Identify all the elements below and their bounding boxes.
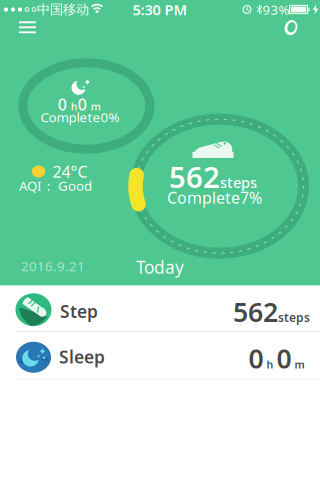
button[interactable]: Menu [13, 15, 42, 39]
staticText: Complete0% [40, 108, 119, 126]
staticText: 24°C [52, 161, 87, 182]
staticText: 562steps [233, 294, 310, 329]
staticText: 0 h0 m [58, 94, 101, 115]
staticText: 93% [262, 1, 289, 18]
button[interactable]: Sleep [0, 332, 320, 379]
staticText: Sleep [59, 345, 105, 368]
staticText: AQI： Good [19, 177, 92, 194]
staticText: 2016.9.21 [21, 257, 85, 275]
staticText: 562steps [169, 157, 257, 196]
button[interactable]: Step [0, 286, 320, 331]
staticText: 5:30 PM [132, 0, 187, 19]
staticText: Today [136, 255, 184, 278]
staticText: Complete7% [167, 187, 262, 208]
button[interactable]: Profile [275, 14, 305, 41]
staticText: Step [60, 300, 98, 323]
button[interactable]: Today [126, 251, 194, 282]
staticText: 0 h 0 m [248, 340, 304, 376]
staticText: 中国移动 [37, 1, 89, 18]
